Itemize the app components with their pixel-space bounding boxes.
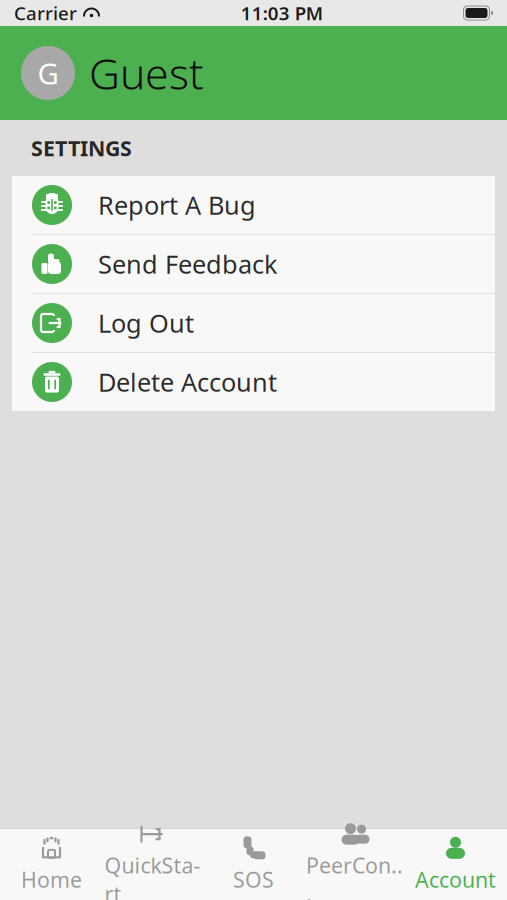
- staticText: Carrier: [14, 1, 77, 25]
- staticText: SETTINGS: [31, 134, 132, 162]
- staticText: Send Feedback: [98, 247, 278, 281]
- staticText: SOS: [233, 865, 274, 894]
- staticText: Home: [21, 865, 82, 894]
- button[interactable]: QuickStart: [102, 829, 203, 900]
- staticText: 11:03 PM: [241, 1, 323, 25]
- button[interactable]: PeerCon...: [304, 829, 405, 900]
- staticText: Delete Account: [98, 365, 277, 399]
- staticText: Account: [415, 865, 496, 894]
- button[interactable]: Log Out: [12, 294, 495, 353]
- staticText: Log Out: [98, 306, 194, 340]
- button[interactable]: SOS: [203, 829, 304, 900]
- staticText: PeerCon...: [306, 851, 403, 900]
- button[interactable]: Send Feedback: [12, 235, 495, 294]
- button[interactable]: Home: [1, 829, 102, 900]
- staticText: Report A Bug: [98, 188, 256, 222]
- staticText: Guest: [89, 45, 204, 101]
- button[interactable]: Report A Bug: [12, 176, 495, 235]
- button[interactable]: Account: [405, 829, 506, 900]
- staticText: G: [37, 53, 58, 92]
- button[interactable]: Delete Account: [12, 353, 495, 411]
- staticText: QuickStart: [104, 851, 200, 900]
